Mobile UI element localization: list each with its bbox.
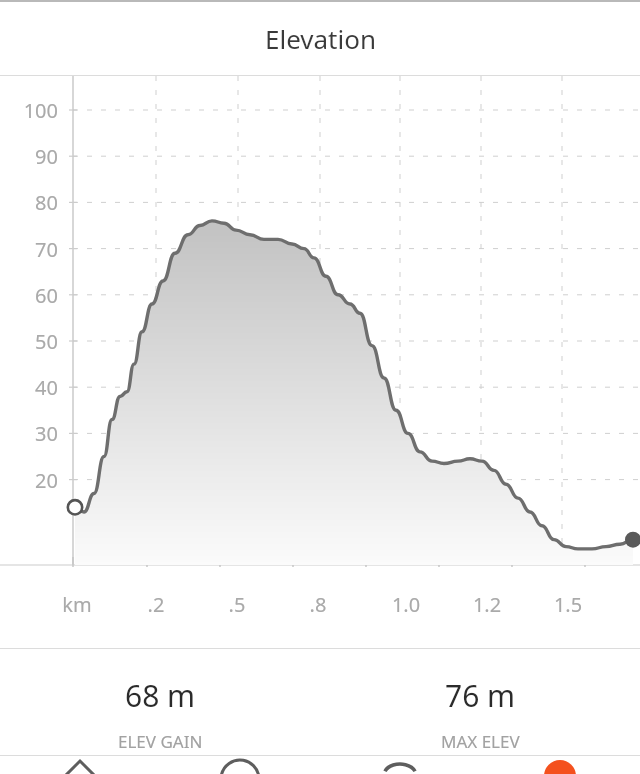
- staticText: .8: [288, 591, 348, 618]
- staticText: 60: [0, 282, 58, 309]
- button[interactable]: Explore: [160, 756, 320, 774]
- button[interactable]: 68 m: [0, 649, 320, 755]
- staticText: 1.0: [376, 591, 436, 618]
- staticText: MAX ELEV: [441, 730, 520, 753]
- staticText: 100: [0, 97, 58, 124]
- staticText: 20: [0, 467, 58, 494]
- button[interactable]: Activity: [320, 756, 480, 774]
- staticText: km: [47, 591, 107, 618]
- staticText: Elevation: [265, 21, 376, 56]
- staticText: 80: [0, 189, 58, 216]
- staticText: 30: [0, 420, 58, 447]
- staticText: 50: [0, 328, 58, 355]
- staticText: 70: [0, 236, 58, 263]
- staticText: 1.5: [538, 591, 598, 618]
- button[interactable]: Home: [0, 756, 160, 774]
- button[interactable]: Record: [480, 756, 640, 774]
- staticText: 76 m: [445, 675, 516, 716]
- staticText: .5: [207, 591, 267, 618]
- staticText: 40: [0, 374, 58, 401]
- staticText: .2: [126, 591, 186, 618]
- staticText: ELEV GAIN: [118, 730, 203, 753]
- staticText: 1.2: [457, 591, 517, 618]
- staticText: 90: [0, 143, 58, 170]
- staticText: 68 m: [125, 675, 196, 716]
- button[interactable]: 76 m: [320, 649, 640, 755]
